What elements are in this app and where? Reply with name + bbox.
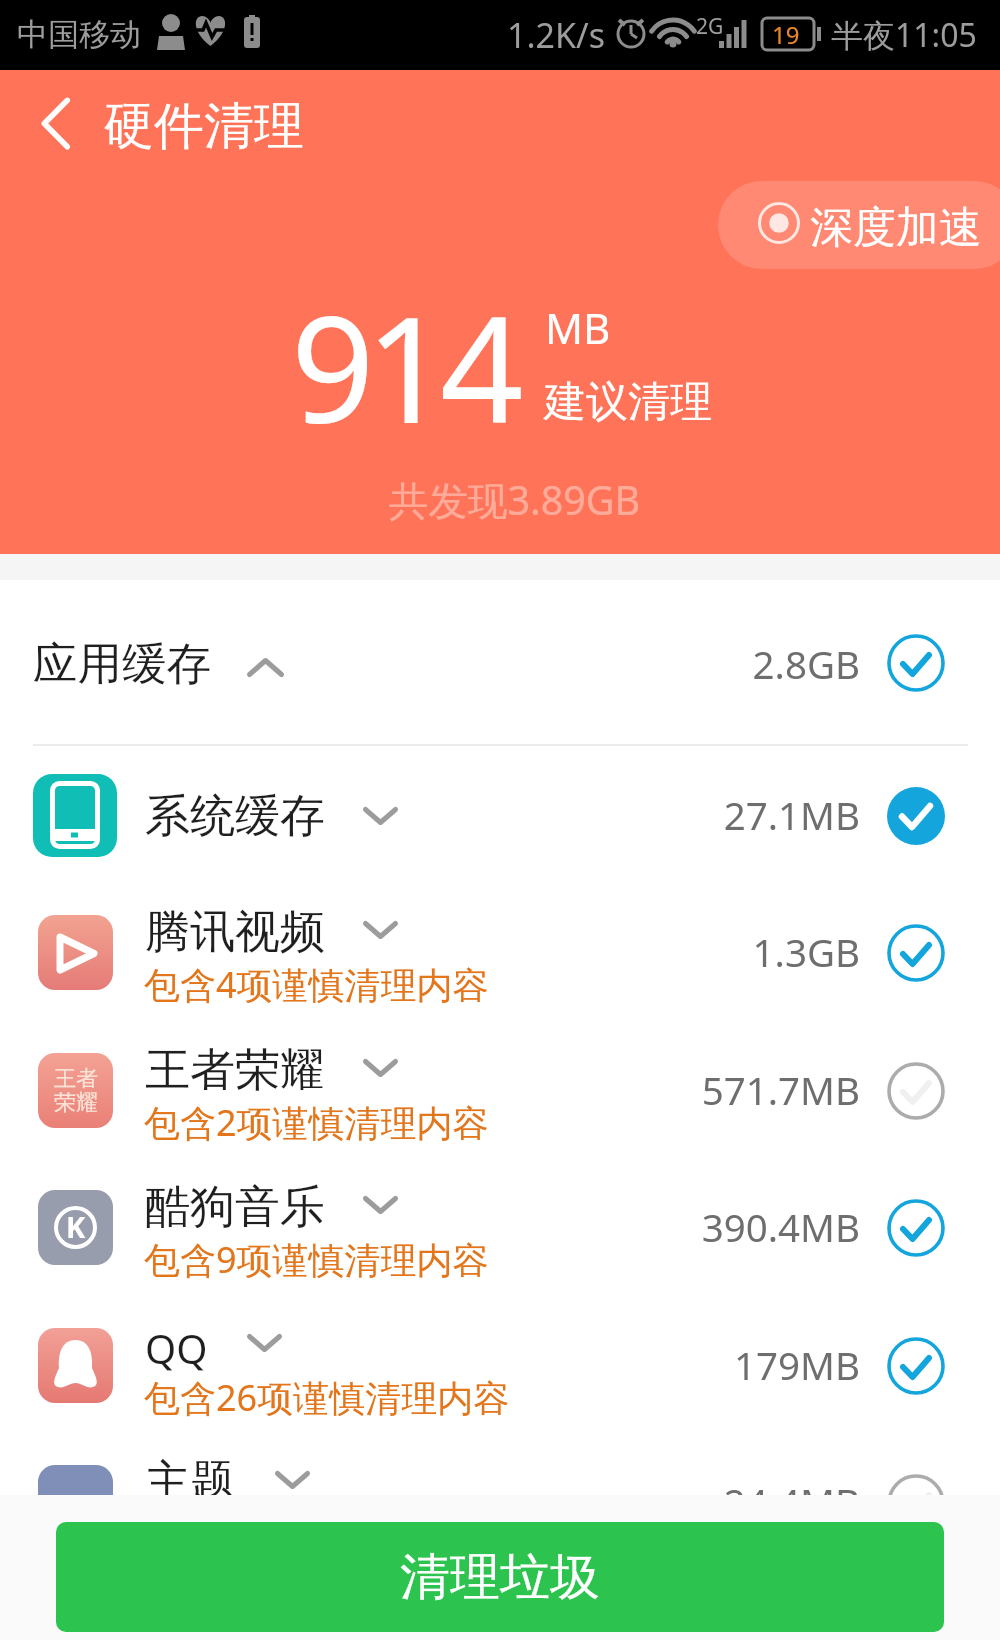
staticText: 深度加速 [810,201,982,255]
staticText: 共发现3.89GB [389,473,641,527]
button[interactable]: Select 应用缓存 [875,622,957,704]
staticText: 硬件清理 [104,95,304,158]
button[interactable]: Back [10,80,110,185]
button[interactable]: K [0,1159,1000,1297]
staticText: 914 [291,267,515,466]
staticText: 包含9项谨慎清理内容 [144,1235,489,1284]
staticText: 571.7MB [500,1064,860,1116]
button[interactable]: Select 腾讯视频 [875,912,957,994]
staticText: 包含1项谨慎清理内容 [144,1510,489,1559]
staticText: MB [545,299,611,356]
staticText: QQ [145,1321,208,1375]
staticText: 包含2项谨慎清理内容 [144,1098,489,1147]
button[interactable]: Select 系统缓存 [875,775,957,857]
staticText: 应用缓存 [33,636,211,692]
button[interactable]: Select 王者荣耀 [875,1050,957,1132]
button[interactable]: QQ [0,1297,1000,1435]
button[interactable]: 清理垃圾 [56,1522,944,1632]
staticText: 24.4MB [500,1476,860,1528]
button[interactable]: 主题 [0,1434,1000,1572]
button[interactable]: Select QQ [875,1325,957,1407]
staticText: 酷狗音乐 [145,1179,325,1236]
button[interactable]: 王者 荣耀 [0,1022,1000,1160]
staticText: 包含4项谨慎清理内容 [144,960,489,1009]
button[interactable]: Select 主题 [875,1462,957,1544]
staticText: 建议清理 [544,376,712,429]
staticText: 中国移动 [17,15,141,54]
staticText: 包含26项谨慎清理内容 [144,1373,510,1422]
staticText: K [66,1207,86,1246]
staticText: 1.2K/s [507,12,605,58]
staticText: 清理垃圾 [400,1546,600,1609]
staticText: 半夜11:05 [831,13,977,57]
button[interactable]: 深度加速 [718,181,1000,269]
staticText: 2G [696,12,724,41]
staticText: 390.4MB [500,1201,860,1253]
staticText: 1.3GB [500,926,860,978]
button[interactable]: 腾讯视频 [0,884,1000,1022]
staticText: 主题 [145,1454,235,1511]
button[interactable]: Select 酷狗音乐 [875,1187,957,1269]
staticText: 王者 荣耀 [54,1065,98,1116]
staticText: 系统缓存 [145,788,325,845]
button[interactable]: 应用缓存 [0,580,1000,745]
staticText: 王者荣耀 [145,1042,325,1099]
staticText: 腾讯视频 [145,904,325,961]
staticText: 179MB [500,1339,860,1391]
staticText: 27.1MB [500,789,860,841]
staticText: 19 [772,18,800,51]
button[interactable]: 系统缓存 [0,747,1000,885]
staticText: 2.8GB [500,638,860,690]
